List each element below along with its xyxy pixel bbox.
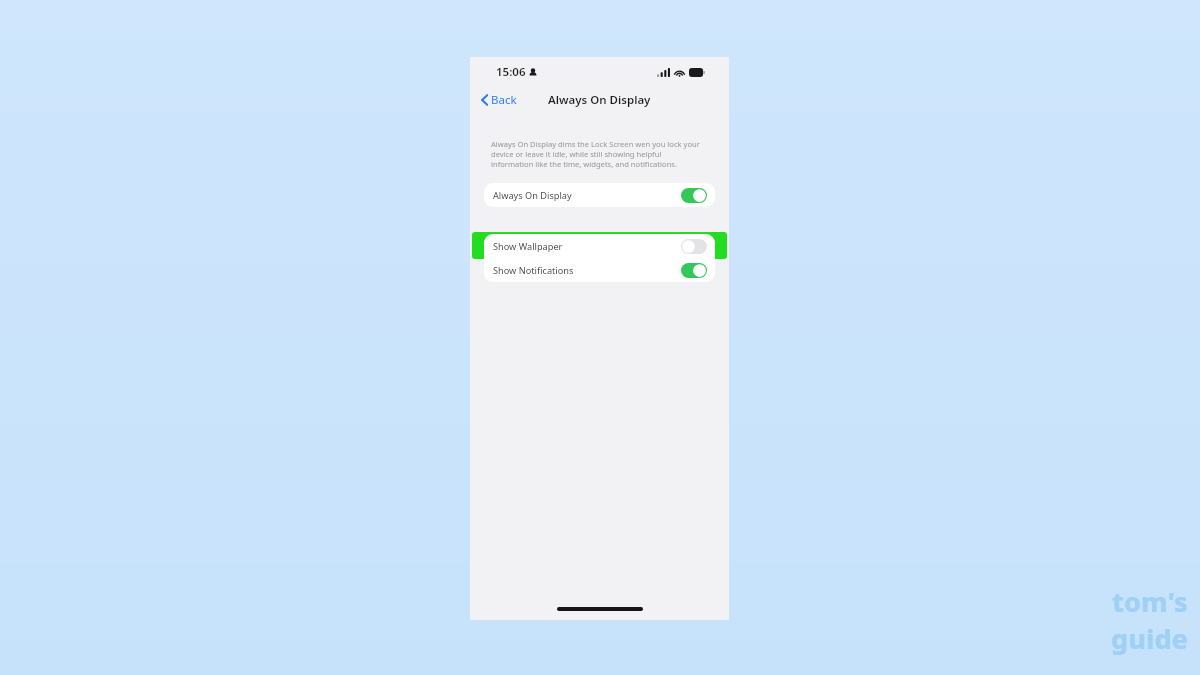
staticText: 15:06 bbox=[496, 64, 526, 80]
staticText: Show Wallpaper bbox=[493, 240, 563, 253]
button[interactable]: Toggle on bbox=[681, 188, 707, 203]
staticText: guide bbox=[1111, 620, 1188, 657]
staticText: tom's bbox=[1112, 583, 1188, 620]
staticText: Always On Display bbox=[548, 92, 651, 108]
staticText: Back bbox=[491, 92, 517, 108]
button[interactable]: Toggle off bbox=[681, 239, 707, 254]
button[interactable]: Show Wallpaper bbox=[484, 234, 715, 258]
staticText: Always On Display dims the Lock Screen w… bbox=[491, 139, 703, 169]
button[interactable]: Show Notifications bbox=[484, 258, 715, 282]
button[interactable]: Back bbox=[478, 89, 520, 111]
button[interactable]: Toggle on bbox=[681, 263, 707, 278]
staticText: Always On Display bbox=[493, 189, 572, 202]
staticText: Show Notifications bbox=[493, 264, 574, 277]
button[interactable]: Always On Display bbox=[484, 183, 715, 207]
